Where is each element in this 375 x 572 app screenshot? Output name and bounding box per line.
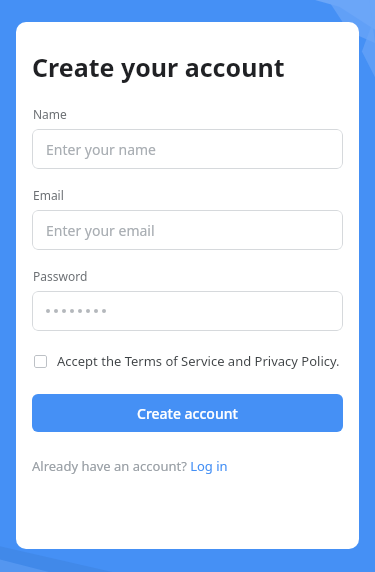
button[interactable]: Already have an account? Log in [32, 456, 343, 476]
staticText: Password [33, 268, 88, 284]
staticText: Email [33, 187, 64, 203]
staticText: Create your account [32, 50, 285, 84]
button[interactable]: Password [32, 291, 343, 331]
button[interactable]: Enter your name [32, 129, 343, 169]
staticText: Enter your name [46, 140, 156, 159]
button[interactable]: Create account [32, 394, 343, 432]
staticText: Already have an account? Log in [32, 457, 228, 475]
button[interactable]: Accept the Terms of Service and Privacy … [32, 350, 343, 372]
staticText: Accept the Terms of Service and Privacy … [57, 352, 343, 370]
button[interactable]: Enter your email [32, 210, 343, 250]
staticText: Name [33, 106, 67, 122]
other: Password [46, 309, 106, 313]
staticText: Enter your email [46, 221, 155, 240]
staticText: Create account [137, 404, 238, 423]
